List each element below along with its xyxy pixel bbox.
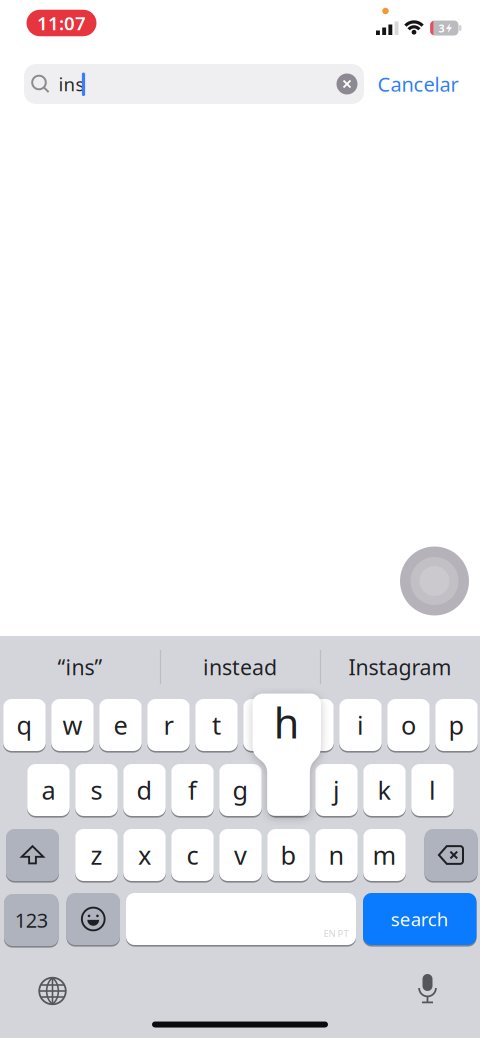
button[interactable]: x: [123, 828, 166, 882]
button[interactable]: 123: [4, 893, 58, 947]
button[interactable]: Cancelar: [377, 71, 458, 97]
staticText: i: [357, 708, 364, 742]
button[interactable]: a: [27, 763, 70, 817]
staticText: s: [90, 773, 102, 807]
button[interactable]: AssistiveTouch menu: [400, 546, 469, 615]
button[interactable]: search: [363, 892, 476, 946]
staticText: ins: [58, 72, 84, 96]
staticText: z: [90, 838, 102, 872]
button[interactable]: j: [315, 763, 358, 817]
button[interactable]: m: [363, 828, 406, 882]
staticText: k: [377, 773, 391, 807]
staticText: p: [448, 708, 464, 742]
staticText: e: [113, 708, 127, 742]
staticText: o: [401, 708, 416, 742]
staticText: l: [429, 773, 436, 807]
staticText: Instagram: [348, 653, 451, 681]
button[interactable]: f: [171, 763, 214, 817]
staticText: m: [372, 838, 396, 872]
button[interactable]: k: [363, 763, 406, 817]
staticText: g: [232, 773, 248, 807]
button[interactable]: Delete: [424, 828, 477, 882]
button[interactable]: Clear text: [336, 73, 357, 94]
button[interactable]: “ins”: [5, 644, 155, 690]
staticText: q: [16, 708, 32, 742]
button[interactable]: y: [243, 698, 286, 752]
button[interactable]: r: [147, 698, 190, 752]
staticText: 123: [15, 907, 48, 933]
button[interactable]: Space: [126, 892, 356, 946]
button[interactable]: g: [219, 763, 262, 817]
button[interactable]: s: [75, 763, 118, 817]
staticText: c: [186, 838, 198, 872]
staticText: r: [163, 708, 173, 742]
staticText: Cancelar: [377, 71, 458, 97]
button[interactable]: Next keyboard: [37, 976, 67, 1006]
button[interactable]: Shift: [6, 828, 59, 882]
staticText: j: [333, 773, 340, 807]
staticText: n: [328, 838, 344, 872]
staticText: EN PT: [323, 927, 348, 940]
staticText: x: [138, 838, 151, 872]
staticText: f: [188, 773, 197, 807]
button[interactable]: z: [75, 828, 118, 882]
button[interactable]: o: [387, 698, 430, 752]
staticText: instead: [203, 653, 277, 681]
button[interactable]: e: [99, 698, 142, 752]
button[interactable]: Instagram: [325, 644, 475, 690]
button[interactable]: u: [291, 698, 334, 752]
button[interactable]: Dictation: [417, 973, 437, 1005]
staticText: search: [391, 907, 449, 931]
button[interactable]: q: [3, 698, 46, 752]
staticText: b: [280, 838, 296, 872]
button[interactable]: p: [435, 698, 478, 752]
staticText: a: [41, 773, 55, 807]
button[interactable]: n: [315, 828, 358, 882]
staticText: h: [274, 695, 300, 750]
staticText: d: [136, 773, 152, 807]
button[interactable]: instead: [165, 644, 315, 690]
button[interactable]: c: [171, 828, 214, 882]
staticText: 3: [438, 21, 444, 35]
button[interactable]: w: [51, 698, 94, 752]
button[interactable]: i: [339, 698, 382, 752]
button[interactable]: l: [411, 763, 454, 817]
button[interactable]: h: [267, 763, 310, 817]
button[interactable]: d: [123, 763, 166, 817]
button[interactable]: 11:07: [26, 10, 96, 36]
button[interactable]: t: [195, 698, 238, 752]
staticText: “ins”: [57, 653, 102, 681]
staticText: t: [212, 708, 221, 742]
staticText: 11:07: [37, 11, 86, 35]
staticText: v: [234, 838, 247, 872]
button[interactable]: Emoji: [66, 892, 120, 946]
button[interactable]: b: [267, 828, 310, 882]
button[interactable]: v: [219, 828, 262, 882]
staticText: w: [62, 708, 82, 742]
